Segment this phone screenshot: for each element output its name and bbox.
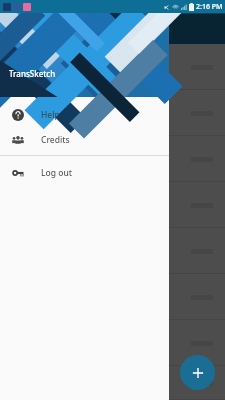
button[interactable]: Log out <box>0 160 169 185</box>
staticText: 2:16 PM <box>196 2 223 12</box>
staticText: TransSketch <box>9 68 56 79</box>
button[interactable]: Help <box>0 102 169 127</box>
button[interactable]: Add <box>180 355 215 390</box>
staticText: Credits <box>41 134 70 146</box>
button[interactable]: Credits <box>0 127 169 152</box>
staticText: Log out <box>41 167 72 179</box>
staticText: Help <box>41 109 60 121</box>
